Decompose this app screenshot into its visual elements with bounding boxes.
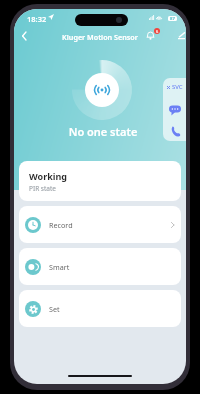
button[interactable]: Smart: [19, 248, 181, 285]
staticText: SVC: [172, 83, 183, 91]
button[interactable]: Working: [19, 161, 181, 201]
staticText: Working: [29, 170, 67, 182]
staticText: Set: [49, 304, 60, 314]
button[interactable]: Chat: [169, 104, 181, 116]
button[interactable]: Record: [19, 206, 181, 243]
staticText: 18:32: [27, 14, 47, 24]
staticText: Record: [49, 220, 73, 230]
button[interactable]: Set: [19, 290, 181, 327]
staticText: PIR state: [29, 184, 56, 193]
button[interactable]: Back: [16, 27, 32, 45]
staticText: 6: [156, 29, 159, 34]
staticText: Smart: [49, 262, 70, 272]
staticText: 87: [170, 16, 175, 21]
staticText: No one state: [17, 124, 186, 139]
button[interactable]: Call: [169, 125, 181, 137]
button[interactable]: Edit: [174, 28, 186, 42]
button[interactable]: Notifications: [146, 28, 162, 44]
staticText: Kluger Motion Sensor: [14, 32, 186, 42]
